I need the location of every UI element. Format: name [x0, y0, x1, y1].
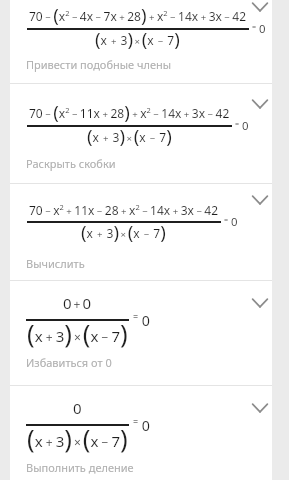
staticText: (x + 3) × (x − 7): [27, 421, 128, 456]
button[interactable]: 70 − (x2 − 4x − 7x + 28) + x2 − 14x + 3x…: [10, 0, 272, 83]
staticText: 0 + 0: [63, 293, 92, 313]
other: Expand step: [248, 0, 272, 19]
button[interactable]: 70 − (x2 − 11x + 28) + x2 − 14x + 3x − 4…: [10, 84, 272, 183]
button[interactable]: 0: [10, 386, 272, 480]
staticText: = 0: [252, 21, 266, 37]
staticText: 70 − (x2 − 4x − 7x + 28) + x2 − 14x + 3x…: [29, 2, 247, 27]
staticText: Избавиться от 0: [26, 355, 112, 370]
staticText: Привести подобные члены: [26, 57, 172, 72]
staticText: (x + 3) × (x − 7): [27, 316, 128, 351]
staticText: Выполнить деление: [26, 460, 134, 475]
staticText: Вычислить: [26, 256, 85, 271]
other: Expand step: [248, 92, 272, 116]
staticText: (x + 3) × (x − 7): [95, 26, 180, 51]
staticText: (x + 3) × (x − 7): [81, 219, 166, 244]
button[interactable]: 70 − x2 + 11x − 28 + x2 − 14x + 3x − 42: [10, 184, 272, 280]
staticText: 70 − x2 + 11x − 28 + x2 − 14x + 3x − 42: [29, 202, 219, 218]
other: Expand step: [248, 291, 272, 315]
staticText: 70 − (x2 − 11x + 28) + x2 − 14x + 3x − 4…: [29, 99, 230, 124]
other: Expand step: [248, 396, 272, 420]
other: Expand step: [248, 188, 272, 212]
staticText: = 0: [133, 415, 151, 435]
button[interactable]: 0 + 0: [10, 281, 272, 385]
staticText: 0: [73, 398, 82, 418]
staticText: (x + 3) × (x − 7): [87, 123, 172, 148]
staticText: = 0: [133, 310, 151, 330]
staticText: = 0: [235, 118, 249, 134]
staticText: Раскрыть скобки: [26, 156, 116, 171]
staticText: = 0: [224, 214, 238, 230]
